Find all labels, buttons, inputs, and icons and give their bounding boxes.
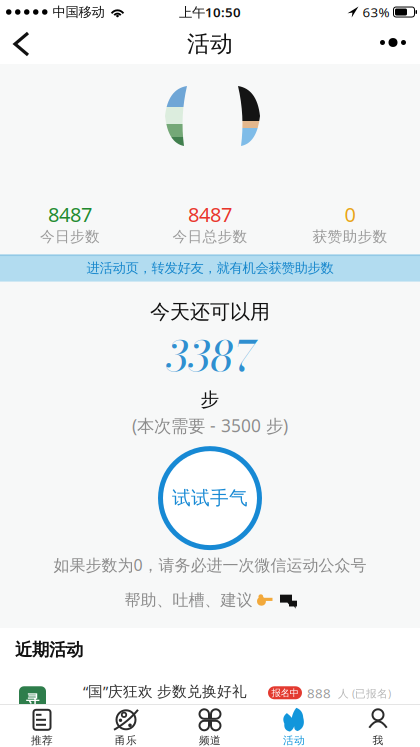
staticText: 报名中	[271, 687, 298, 699]
button[interactable]: 甬乐	[84, 708, 168, 747]
staticText: 中国移动	[52, 4, 104, 20]
staticText: 帮助、吐槽、建议	[124, 590, 252, 610]
staticText: 63%	[362, 3, 389, 21]
staticText: 频道	[199, 734, 221, 747]
button[interactable]: 我	[336, 708, 420, 747]
button[interactable]: 推荐	[0, 708, 84, 747]
staticText: 8487	[188, 201, 232, 228]
staticText: 上午10:50	[179, 3, 241, 21]
staticText: 试试手气	[172, 487, 248, 510]
staticText: 如果步数为0，请务必进一次微信运动公众号	[53, 554, 366, 575]
staticText: 甬乐	[115, 734, 137, 747]
button[interactable]: 进活动页，转发好友，就有机会获赞助步数	[0, 255, 420, 282]
staticText: 进活动页，转发好友，就有机会获赞助步数	[86, 260, 333, 276]
staticText: 今天还可以用	[150, 300, 270, 324]
button[interactable]: 更多	[380, 25, 420, 62]
staticText: (本次需要 - 3500 步)	[132, 414, 288, 437]
staticText: 寻	[26, 692, 39, 708]
staticText: 推荐	[31, 734, 53, 747]
staticText: 今日步数	[40, 228, 100, 246]
button[interactable]: 活动	[252, 708, 336, 747]
button[interactable]: 寻	[0, 681, 420, 713]
staticText: 获赞助步数	[312, 228, 387, 246]
staticText: 我	[372, 734, 383, 747]
staticText: 近期活动	[15, 639, 83, 660]
staticText: 8487	[48, 201, 92, 228]
button[interactable]: 试试手气	[158, 446, 262, 550]
staticText: “国”庆狂欢 步数兑换好礼	[83, 681, 247, 701]
staticText: 活动	[283, 734, 305, 747]
staticText: 888	[307, 684, 331, 702]
staticText: 步	[200, 388, 219, 411]
button[interactable]: 返回	[0, 24, 28, 64]
staticText: 今日总步数	[172, 228, 247, 246]
staticText: 人 (已报名)	[338, 686, 391, 700]
staticText: 3387	[166, 325, 254, 388]
staticText: 活动	[187, 30, 233, 58]
button[interactable]: 帮助、吐槽、建议	[124, 590, 295, 610]
staticText: 0	[344, 201, 355, 228]
button[interactable]: 频道	[168, 708, 252, 747]
